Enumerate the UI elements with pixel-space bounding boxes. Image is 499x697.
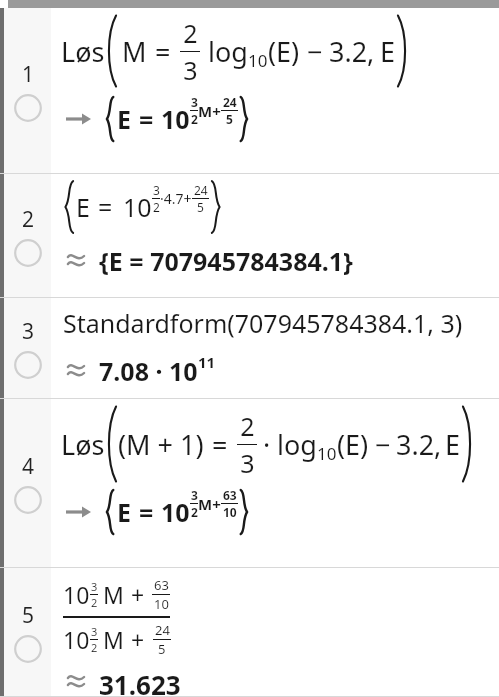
staticText: 3	[22, 317, 35, 346]
staticText: log	[208, 33, 248, 70]
other: Approximate result	[67, 251, 85, 271]
staticText: M	[103, 624, 124, 655]
staticText: 10	[248, 49, 268, 72]
staticText: 4	[22, 452, 35, 481]
staticText: −	[375, 426, 391, 463]
button[interactable]: Standardform(707945784384.1, 3)	[51, 298, 499, 398]
staticText: 10	[154, 595, 169, 613]
staticText: 63	[223, 487, 237, 503]
staticText: 10	[317, 442, 337, 465]
staticText: 5	[158, 640, 166, 658]
button[interactable]: Toggle row 5	[14, 635, 42, 663]
staticText: 2	[183, 16, 198, 50]
staticText: M	[122, 33, 147, 70]
staticText: Løs	[61, 33, 105, 70]
staticText: =	[212, 426, 228, 463]
staticText: 3	[183, 53, 198, 87]
staticText: E	[380, 33, 396, 70]
staticText: E	[445, 426, 461, 463]
staticText: 7.08 · 10	[99, 354, 198, 388]
staticText: 10	[161, 102, 190, 136]
other: Exact result	[65, 502, 91, 522]
button[interactable]: 10	[51, 568, 499, 696]
staticText: E	[117, 102, 132, 136]
staticText: 2	[91, 640, 98, 655]
staticText: 10	[63, 579, 90, 610]
staticText: 5	[22, 601, 35, 630]
staticText: =	[139, 495, 154, 529]
staticText: 3	[153, 182, 160, 198]
staticText: Løs	[61, 426, 105, 463]
staticText: +	[131, 624, 145, 655]
staticText: 2	[191, 111, 198, 127]
staticText: (E)	[268, 33, 300, 70]
staticText: ·	[263, 426, 271, 463]
staticText: 3	[91, 579, 98, 594]
staticText: 3	[91, 624, 98, 639]
button[interactable]: Toggle row 1	[14, 94, 42, 122]
staticText: 5	[226, 111, 233, 127]
staticText: E	[76, 190, 90, 224]
staticText: 11	[198, 352, 216, 372]
staticText: 1	[22, 60, 35, 89]
other: Exact result	[65, 109, 91, 129]
staticText: (E)	[337, 426, 369, 463]
staticText: 10	[223, 504, 237, 520]
staticText: +	[131, 579, 145, 610]
staticText: 3.2,	[329, 33, 375, 70]
staticText: Standardform(707945784384.1, 3)	[63, 306, 463, 340]
staticText: 10	[161, 495, 190, 529]
staticText: 2	[191, 504, 198, 520]
staticText: 24	[155, 621, 170, 639]
staticText: E	[117, 495, 132, 529]
staticText: =	[155, 33, 171, 70]
staticText: 5	[197, 199, 204, 215]
button[interactable]: Løs	[51, 399, 499, 567]
staticText: log	[277, 426, 317, 463]
staticText: =	[139, 102, 154, 136]
staticText: ·4.7+	[160, 189, 192, 208]
button[interactable]: Toggle row 3	[14, 351, 42, 379]
other: Approximate result	[67, 361, 85, 381]
staticText: 3	[191, 94, 198, 110]
staticText: =	[98, 190, 113, 224]
staticText: 2	[153, 199, 160, 215]
staticText: (M + 1)	[118, 426, 204, 463]
staticText: M+	[198, 101, 221, 121]
staticText: M	[103, 579, 124, 610]
button[interactable]: Løs	[51, 8, 499, 173]
staticText: 3.2,	[396, 426, 442, 463]
staticText: 24	[194, 182, 208, 198]
staticText: 24	[223, 94, 237, 110]
staticText: 10	[63, 624, 90, 655]
staticText: 2	[240, 409, 255, 443]
staticText: {E = 707945784384.1}	[99, 244, 353, 278]
staticText: 3	[240, 446, 255, 480]
staticText: −	[307, 33, 323, 70]
button[interactable]: E	[51, 174, 499, 297]
staticText: 31.623	[99, 667, 181, 696]
other: Approximate result	[67, 672, 85, 692]
staticText: 2	[22, 205, 35, 234]
staticText: 10	[123, 190, 152, 224]
staticText: 3	[191, 487, 198, 503]
staticText: M+	[198, 494, 221, 514]
staticText: 63	[154, 576, 169, 594]
button[interactable]: Toggle row 2	[14, 239, 42, 267]
button[interactable]: Toggle row 4	[14, 486, 42, 514]
staticText: 2	[91, 595, 98, 610]
